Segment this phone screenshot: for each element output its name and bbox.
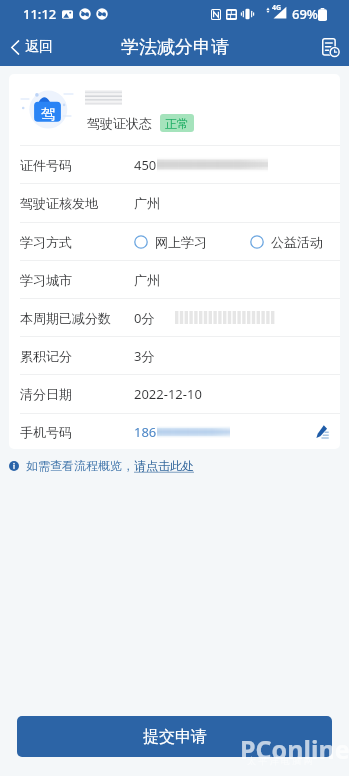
staticText: 公益活动 <box>271 234 323 250</box>
staticText: 11:12 <box>23 5 57 23</box>
staticText: 清分日期 <box>20 386 72 402</box>
button[interactable]: 返回 <box>0 31 65 63</box>
staticText: 累积记分 <box>20 348 72 364</box>
button[interactable]: 编辑手机号码 <box>310 419 332 445</box>
staticText: 广州 <box>134 195 160 211</box>
staticText: 学习方式 <box>20 234 72 250</box>
button[interactable]: 学习记录 <box>311 31 349 63</box>
staticText: 驾驶证核发地 <box>20 195 98 211</box>
staticText: 本周期已减分数 <box>20 310 111 326</box>
staticText: 3分 <box>134 347 155 365</box>
staticText: 请点击此处 <box>134 458 194 473</box>
staticText: 正常 <box>165 116 189 131</box>
staticText: 驾 <box>41 105 56 123</box>
staticText: 太 平 洋 电 脑 网 <box>247 754 313 766</box>
staticText: 返回 <box>25 38 53 56</box>
staticText: 如需查看流程概览， <box>26 458 134 473</box>
staticText: 学习城市 <box>20 272 72 288</box>
staticText: 2022-12-10 <box>134 385 202 403</box>
staticText: 450 <box>134 156 157 174</box>
staticText: 学法减分申请 <box>121 36 229 59</box>
button[interactable]: 公益活动 <box>250 234 323 250</box>
staticText: 广州 <box>134 272 160 288</box>
staticText: 0分 <box>134 309 155 327</box>
staticText: 提交申请 <box>143 727 207 747</box>
button[interactable]: 提交申请 <box>17 716 332 757</box>
staticText: 186 <box>134 423 157 441</box>
staticText: PConline <box>240 732 349 766</box>
staticText: 驾驶证状态 <box>87 115 152 131</box>
staticText: 证件号码 <box>20 157 72 173</box>
button[interactable]: 网上学习 <box>134 234 207 250</box>
staticText: 69% <box>292 5 318 23</box>
staticText: 网上学习 <box>155 234 207 250</box>
staticText: 4G <box>272 3 282 13</box>
staticText: 手机号码 <box>20 424 72 440</box>
button[interactable]: 如需查看流程概览， <box>9 456 194 475</box>
